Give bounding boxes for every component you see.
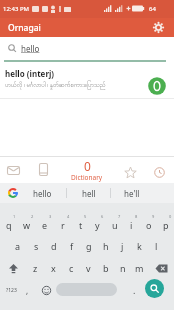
- staticText: k: [137, 240, 142, 252]
- button[interactable]: m: [131, 257, 148, 279]
- button[interactable]: l: [148, 235, 165, 257]
- staticText: 9: [152, 214, 155, 219]
- button[interactable]: [148, 77, 166, 95]
- staticText: b: [103, 262, 109, 274]
- staticText: Dictionary: [71, 173, 103, 182]
- button[interactable]: z: [26, 257, 44, 279]
- button[interactable]: [56, 283, 117, 296]
- staticText: he'll: [124, 188, 140, 199]
- button[interactable]: a: [9, 235, 27, 257]
- staticText: n: [120, 262, 126, 274]
- button[interactable]: [116, 157, 146, 183]
- staticText: v: [86, 262, 91, 274]
- staticText: s: [34, 240, 39, 252]
- button[interactable]: 5: [72, 212, 89, 235]
- button[interactable]: hello (interj): [0, 62, 174, 98]
- button[interactable]: 9: [140, 212, 157, 235]
- button[interactable]: 2: [18, 212, 36, 235]
- button[interactable]: ?123: [0, 279, 22, 301]
- button[interactable]: 8: [123, 212, 140, 235]
- staticText: 6: [101, 214, 104, 219]
- button[interactable]: ,: [20, 279, 34, 301]
- button[interactable]: v: [80, 257, 97, 279]
- staticText: 12:43 PM: [3, 5, 29, 13]
- button[interactable]: [145, 279, 164, 298]
- button[interactable]: he'll: [111, 183, 153, 203]
- button[interactable]: s: [27, 235, 45, 257]
- button[interactable]: hello: [0, 37, 174, 60]
- button[interactable]: x: [44, 257, 62, 279]
- button[interactable]: .: [125, 279, 143, 301]
- staticText: 7: [118, 214, 121, 219]
- staticText: p: [163, 219, 169, 231]
- staticText: u: [112, 219, 118, 231]
- button[interactable]: 1: [0, 212, 18, 235]
- staticText: 0: [169, 214, 172, 219]
- button[interactable]: f: [63, 235, 80, 257]
- staticText: ဟယ်လို ၊ မင်္ဂလာပါ ၊ နှုတ်ဆက်စကားပြောသည်: [5, 81, 106, 90]
- staticText: hello: [21, 43, 40, 54]
- staticText: Ornagai: [8, 22, 41, 34]
- staticText: d: [51, 240, 57, 252]
- button[interactable]: 7: [106, 212, 123, 235]
- staticText: ,: [26, 285, 29, 296]
- staticText: h: [103, 240, 109, 252]
- button[interactable]: [146, 157, 174, 183]
- staticText: y: [95, 219, 100, 231]
- staticText: q: [6, 219, 12, 231]
- button[interactable]: [0, 257, 26, 279]
- button[interactable]: [148, 18, 168, 37]
- staticText: c: [69, 262, 74, 274]
- staticText: 4: [67, 214, 70, 219]
- button[interactable]: 4: [54, 212, 72, 235]
- staticText: 1: [13, 214, 16, 219]
- button[interactable]: hell: [67, 183, 110, 203]
- staticText: 0: [84, 158, 91, 174]
- button[interactable]: 0: [62, 157, 112, 183]
- staticText: e: [42, 219, 48, 231]
- staticText: o: [146, 219, 152, 231]
- button[interactable]: g: [80, 235, 97, 257]
- staticText: t: [79, 219, 83, 231]
- button[interactable]: b: [97, 257, 114, 279]
- button[interactable]: [148, 257, 174, 279]
- button[interactable]: 0: [157, 212, 174, 235]
- button[interactable]: j: [114, 235, 131, 257]
- button[interactable]: [0, 183, 26, 203]
- staticText: 3: [49, 214, 52, 219]
- button[interactable]: h: [97, 235, 114, 257]
- staticText: x: [51, 262, 56, 274]
- staticText: m: [135, 262, 144, 274]
- staticText: .: [133, 284, 136, 296]
- staticText: 5: [84, 214, 87, 219]
- button[interactable]: c: [62, 257, 80, 279]
- staticText: 2: [31, 214, 34, 219]
- button[interactable]: n: [114, 257, 131, 279]
- button[interactable]: 3: [36, 212, 54, 235]
- staticText: a: [15, 240, 21, 252]
- button[interactable]: d: [45, 235, 63, 257]
- staticText: hello (interj): [5, 68, 55, 79]
- button[interactable]: 6: [89, 212, 106, 235]
- staticText: j: [121, 240, 124, 252]
- button[interactable]: hello: [22, 183, 62, 203]
- staticText: f: [70, 240, 74, 252]
- staticText: hello: [33, 188, 52, 199]
- staticText: g: [86, 240, 92, 252]
- staticText: hell: [82, 188, 96, 199]
- staticText: 8: [135, 214, 138, 219]
- button[interactable]: k: [131, 235, 148, 257]
- button[interactable]: [0, 157, 30, 183]
- staticText: l: [155, 240, 158, 252]
- button[interactable]: [37, 279, 56, 301]
- staticText: ?123: [6, 287, 17, 294]
- staticText: z: [33, 262, 38, 274]
- staticText: i: [130, 219, 133, 231]
- staticText: 64: [149, 5, 156, 13]
- button[interactable]: [30, 157, 58, 183]
- staticText: w: [23, 219, 31, 231]
- staticText: r: [61, 219, 65, 231]
